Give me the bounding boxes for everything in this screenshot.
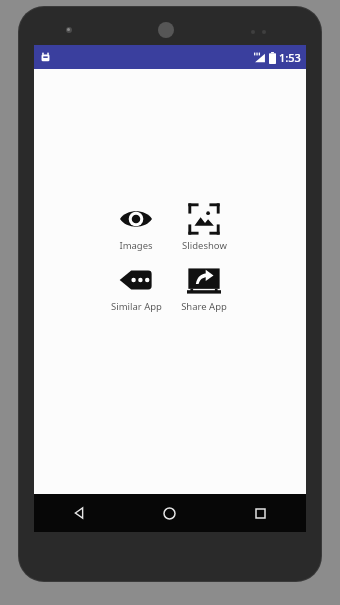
staticText: Share App xyxy=(181,300,227,313)
button[interactable]: Share App xyxy=(173,260,235,315)
button[interactable]: Images xyxy=(105,199,167,254)
button[interactable]: Similar App xyxy=(105,260,167,315)
staticText: Images xyxy=(119,239,153,252)
button[interactable]: Recent apps xyxy=(215,494,306,532)
button[interactable]: Slideshow xyxy=(173,199,235,254)
button[interactable]: Back xyxy=(34,494,124,532)
button[interactable]: Home xyxy=(124,494,215,532)
staticText: Similar App xyxy=(111,300,162,313)
staticText: Slideshow xyxy=(182,239,227,252)
staticText: 1:53 xyxy=(279,50,301,65)
